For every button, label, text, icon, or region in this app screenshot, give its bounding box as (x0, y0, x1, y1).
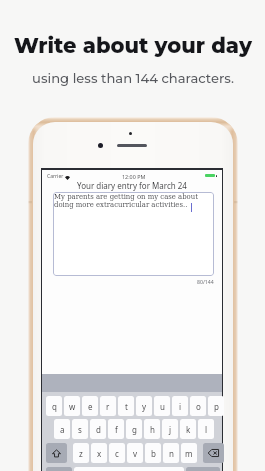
staticText: Carrier (47, 173, 64, 180)
button[interactable]: k (180, 419, 196, 439)
button[interactable]: q (46, 396, 62, 416)
staticText: j (169, 424, 172, 435)
button[interactable]: p (208, 396, 224, 416)
button[interactable]: y (136, 396, 152, 416)
staticText: z (79, 448, 83, 459)
staticText: c (115, 448, 119, 459)
staticText: r (106, 401, 110, 412)
staticText: using less than 144 characters. (32, 70, 234, 86)
staticText: p (214, 401, 219, 412)
staticText: a (60, 424, 65, 435)
staticText: Write about your day (14, 33, 252, 59)
button[interactable]: h (144, 419, 160, 439)
button[interactable]: o (190, 396, 206, 416)
button[interactable]: c (109, 443, 125, 463)
button[interactable]: j (162, 419, 178, 439)
staticText: h (150, 424, 155, 435)
staticText: w (69, 401, 76, 412)
button[interactable]: g (126, 419, 142, 439)
button[interactable]: v (127, 443, 143, 463)
staticText: u (160, 401, 165, 412)
button[interactable]: Backspace (203, 443, 224, 463)
button[interactable]: Shift (46, 443, 67, 463)
button[interactable]: n (163, 443, 179, 463)
button[interactable]: i (172, 396, 188, 416)
button[interactable]: x (91, 443, 107, 463)
staticText: o (196, 401, 201, 412)
button[interactable]: t (118, 396, 134, 416)
button[interactable]: e (82, 396, 98, 416)
staticText: 12:00 PM (122, 173, 146, 180)
button[interactable]: u (154, 396, 170, 416)
staticText: e (88, 401, 93, 412)
button[interactable]: w (64, 396, 80, 416)
button[interactable]: r (100, 396, 116, 416)
staticText: 80/144 (197, 278, 214, 285)
staticText: y (142, 401, 147, 412)
staticText: m (185, 448, 193, 459)
button[interactable]: return (186, 467, 220, 471)
button[interactable]: l (198, 419, 214, 439)
button[interactable]: d (90, 419, 106, 439)
staticText: v (133, 448, 138, 459)
button[interactable]: s (72, 419, 88, 439)
staticText: k (186, 424, 191, 435)
staticText: My parents are getting on my case about … (54, 193, 198, 209)
button[interactable]: f (108, 419, 124, 439)
staticText: x (97, 448, 102, 459)
button[interactable]: b (145, 443, 161, 463)
staticText: q (52, 401, 57, 412)
staticText: s (78, 424, 82, 435)
staticText: t (125, 401, 128, 412)
staticText: l (205, 424, 208, 435)
staticText: g (132, 424, 137, 435)
button[interactable]: m (181, 443, 197, 463)
button[interactable]: 123 (46, 467, 72, 471)
button[interactable]: a (54, 419, 70, 439)
staticText: n (169, 448, 174, 459)
staticText: f (115, 424, 118, 435)
staticText: i (179, 401, 182, 412)
button[interactable]: z (73, 443, 89, 463)
button[interactable]: My parents are getting on my case about … (53, 192, 214, 276)
staticText: b (151, 448, 156, 459)
staticText: Your diary entry for March 24 (77, 180, 187, 191)
staticText: d (96, 424, 101, 435)
